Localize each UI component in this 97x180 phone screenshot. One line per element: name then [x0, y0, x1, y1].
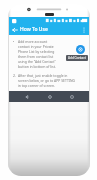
staticText: •: [13, 39, 15, 44]
button[interactable]: Home: [44, 91, 55, 102]
staticText: Phone List by selecting: [18, 49, 55, 54]
staticText: screen below, or go to APP SETTING: [18, 78, 75, 83]
button[interactable]: Recent apps: [66, 91, 77, 102]
staticText: button in bottom of list.: [18, 64, 56, 69]
button[interactable]: Add contact: [76, 45, 85, 54]
staticText: Add more account: [18, 39, 48, 44]
button[interactable]: Back: [21, 91, 32, 102]
staticText: Add Contact: [68, 56, 86, 60]
staticText: them from contact list: [18, 54, 54, 59]
staticText: 2.: [13, 73, 16, 78]
staticText: in top corner of screen.: [18, 83, 55, 88]
staticText: using the "Add Contact": [18, 59, 56, 64]
staticText: After that, just enable toggle in: [18, 73, 68, 78]
staticText: contact in your Private: [18, 44, 54, 49]
staticText: How To Use: [20, 26, 78, 33]
button[interactable]: More options: [78, 24, 89, 35]
button[interactable]: Back: [9, 24, 20, 35]
